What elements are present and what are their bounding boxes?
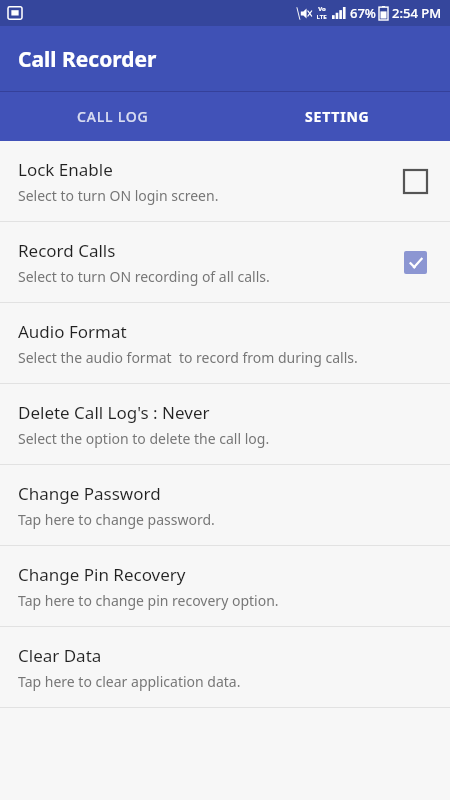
button[interactable]: Clear Data	[0, 627, 450, 707]
staticText: Change Pin Recovery	[18, 563, 186, 586]
staticText: Audio Format	[18, 320, 127, 343]
staticText: Call Recorder	[18, 45, 157, 74]
staticText: Lock Enable	[18, 158, 113, 181]
staticText: Tap here to change password.	[18, 510, 215, 529]
staticText: Vo	[318, 5, 326, 13]
button[interactable]: Record Calls	[0, 222, 450, 302]
staticText: Clear Data	[18, 644, 102, 667]
button[interactable]: Audio Format	[0, 303, 450, 383]
button[interactable]: Delete Call Log's : Never	[0, 384, 450, 464]
staticText: Change Password	[18, 482, 161, 505]
staticText: SETTING	[305, 107, 370, 126]
button[interactable]: Unchecked	[398, 164, 432, 198]
button[interactable]: Change Password	[0, 465, 450, 545]
staticText: Tap here to clear application data.	[18, 672, 241, 691]
staticText: CALL LOG	[77, 107, 149, 126]
button[interactable]: Checked	[398, 245, 432, 279]
staticText: 67%	[350, 4, 376, 22]
button[interactable]: Change Pin Recovery	[0, 546, 450, 626]
staticText: Delete Call Log's : Never	[18, 401, 210, 424]
staticText: Select to turn ON login screen.	[18, 186, 219, 205]
staticText: Select to turn ON recording of all calls…	[18, 267, 270, 286]
button[interactable]: Lock Enable	[0, 141, 450, 221]
staticText: Select the audio format to record from d…	[18, 348, 358, 367]
staticText: Select the option to delete the call log…	[18, 429, 270, 448]
button[interactable]: CALL LOG	[0, 92, 225, 141]
staticText: Tap here to change pin recovery option.	[18, 591, 279, 610]
button[interactable]: SETTING	[225, 92, 450, 141]
staticText: Record Calls	[18, 239, 116, 262]
staticText: 2:54 PM	[392, 4, 442, 22]
staticText: LTE	[316, 13, 327, 21]
